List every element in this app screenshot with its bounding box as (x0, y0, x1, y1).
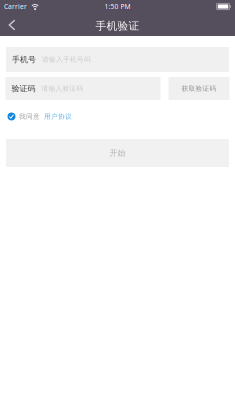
staticText: 验证码 (11, 84, 35, 93)
button[interactable]: Back (0, 16, 24, 36)
button[interactable]: 获取验证码 (168, 77, 229, 100)
button[interactable]: 我同意 (7, 112, 72, 121)
staticText: 手机号 (12, 55, 36, 64)
staticText: 手机验证 (95, 19, 139, 32)
staticText: 请输入手机号码 (42, 55, 91, 64)
button[interactable]: 开始 (6, 139, 229, 167)
staticText: 我同意 (19, 112, 40, 121)
staticText: 请输入验证码 (41, 84, 83, 93)
staticText: 开始 (109, 148, 125, 158)
staticText: Carrier (4, 2, 27, 11)
staticText: 1:50 PM (104, 2, 130, 11)
staticText: 用户协议 (44, 112, 72, 121)
staticText: 获取验证码 (181, 84, 216, 93)
